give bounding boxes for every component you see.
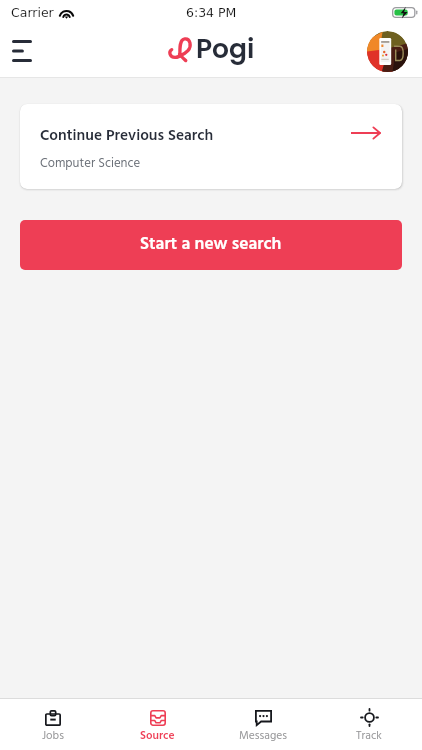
button[interactable]: Source <box>105 699 210 750</box>
staticText: Continue Previous Search <box>40 124 214 149</box>
staticText: Start a new search <box>140 231 282 259</box>
staticText: Track <box>356 727 382 745</box>
staticText: Source <box>140 727 175 745</box>
button[interactable]: Open navigation menu <box>2 31 42 71</box>
button[interactable]: Messages <box>210 699 316 750</box>
button[interactable]: Continue Previous Search <box>20 104 402 189</box>
button[interactable]: Profile <box>367 31 408 72</box>
staticText: Computer Science <box>40 153 141 173</box>
staticText: 6:34 PM <box>186 5 237 20</box>
button[interactable]: Jobs <box>0 699 105 750</box>
staticText: Messages <box>239 727 288 745</box>
staticText: Jobs <box>42 727 64 745</box>
staticText: Pogi <box>196 30 255 67</box>
button[interactable]: Start a new search <box>20 220 402 270</box>
button[interactable]: Track <box>316 699 422 750</box>
staticText: Carrier <box>11 5 54 20</box>
